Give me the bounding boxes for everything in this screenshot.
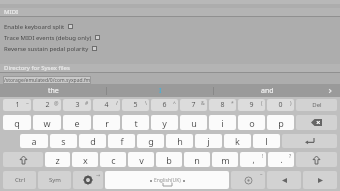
staticText: Sym: [49, 176, 61, 184]
button[interactable]: /storage/emulated/0/com.syxpad.fm: [3, 76, 91, 84]
button[interactable]: Reverse sustain pedal polarity: [0, 44, 340, 53]
button[interactable]: e: [63, 115, 91, 130]
button[interactable]: Sym: [38, 171, 71, 189]
button[interactable]: 5: [122, 99, 149, 111]
button[interactable]: g: [137, 134, 164, 148]
button[interactable]: n: [184, 152, 210, 167]
staticText: o: [249, 117, 255, 129]
button[interactable]: r: [93, 115, 120, 130]
button[interactable]: q: [3, 115, 31, 130]
staticText: the: [48, 86, 59, 96]
button[interactable]: 8: [209, 99, 236, 111]
button[interactable]: f: [108, 134, 135, 148]
button[interactable]: Del: [296, 99, 337, 111]
staticText: *: [231, 100, 234, 107]
staticText: 7: [191, 100, 196, 110]
staticText: Directory for Sysex files: [4, 64, 70, 72]
button[interactable]: [282, 134, 337, 148]
staticText: v: [139, 154, 144, 166]
staticText: b: [166, 154, 172, 166]
button[interactable]: Input settings: [73, 171, 103, 189]
staticText: English(UK): [154, 177, 181, 184]
staticText: and: [261, 86, 274, 96]
button[interactable]: l: [253, 134, 280, 148]
button[interactable]: i: [209, 115, 236, 130]
button[interactable]: More suggestions: [320, 84, 340, 97]
button[interactable]: x: [72, 152, 98, 167]
button[interactable]: a: [20, 134, 48, 148]
button[interactable]: 7: [180, 99, 207, 111]
staticText: /: [116, 100, 118, 107]
staticText: MIDI: [4, 8, 19, 16]
staticText: ^: [173, 100, 176, 107]
staticText: e: [74, 117, 80, 129]
button[interactable]: v: [128, 152, 154, 167]
staticText: r: [105, 117, 109, 129]
staticText: g: [148, 135, 154, 147]
button[interactable]: b: [156, 152, 182, 167]
button[interactable]: 9: [238, 99, 265, 111]
button[interactable]: 2: [33, 99, 61, 111]
staticText: /storage/emulated/0/com.syxpad.fm: [4, 77, 91, 84]
staticText: Del: [312, 101, 322, 109]
staticText: Trace MIDI events (debug only): [4, 34, 92, 42]
staticText: u: [191, 117, 197, 129]
button[interactable]: and: [214, 84, 320, 97]
button[interactable]: Shift: [3, 152, 43, 167]
button[interactable]: m: [212, 152, 238, 167]
staticText: !: [262, 153, 264, 160]
button[interactable]: the: [0, 84, 106, 97]
staticText: a: [31, 135, 37, 147]
other: Left: [267, 171, 301, 189]
button[interactable]: 4: [93, 99, 120, 111]
button[interactable]: j: [195, 134, 222, 148]
staticText: 5: [133, 100, 138, 110]
button[interactable]: [296, 115, 337, 130]
staticText: @: [54, 100, 59, 107]
button[interactable]: ,: [240, 152, 266, 167]
staticText: h: [177, 135, 183, 147]
other: Right: [303, 171, 337, 189]
staticText: y: [162, 117, 167, 129]
button[interactable]: d: [79, 134, 106, 148]
button[interactable]: k: [224, 134, 251, 148]
staticText: \: [145, 100, 147, 107]
staticText: x: [83, 154, 88, 166]
button[interactable]: h: [166, 134, 193, 148]
button[interactable]: s: [50, 134, 77, 148]
button[interactable]: Enable keyboard split: [0, 22, 340, 31]
staticText: (: [261, 100, 263, 107]
button[interactable]: u: [180, 115, 207, 130]
staticText: p: [278, 117, 284, 129]
button[interactable]: Emoji: [231, 171, 265, 189]
staticText: 1: [15, 100, 20, 110]
staticText: 2: [45, 100, 50, 110]
button[interactable]: o: [238, 115, 265, 130]
button[interactable]: I: [107, 84, 213, 97]
staticText: d: [90, 135, 96, 147]
staticText: f: [120, 135, 124, 147]
button[interactable]: Space: [105, 171, 229, 189]
staticText: 9: [249, 100, 254, 110]
button[interactable]: Trace MIDI events (debug only): [0, 33, 340, 42]
staticText: t: [134, 117, 138, 129]
button[interactable]: y: [151, 115, 178, 130]
button[interactable]: z: [45, 152, 70, 167]
button[interactable]: 1: [3, 99, 31, 111]
button[interactable]: c: [100, 152, 126, 167]
button[interactable]: t: [122, 115, 149, 130]
button[interactable]: w: [33, 115, 61, 130]
button[interactable]: Ctrl: [3, 171, 36, 189]
staticText: 6: [162, 100, 167, 110]
staticText: m: [221, 154, 230, 166]
button[interactable]: 3: [63, 99, 91, 111]
button[interactable]: 6: [151, 99, 178, 111]
button[interactable]: Left: [267, 171, 301, 189]
button[interactable]: .: [268, 152, 294, 167]
button[interactable]: p: [267, 115, 294, 130]
staticText: q: [14, 117, 20, 129]
staticText: k: [235, 135, 240, 147]
button[interactable]: Shift: [296, 152, 337, 167]
button[interactable]: 0: [267, 99, 294, 111]
button[interactable]: Right: [303, 171, 337, 189]
